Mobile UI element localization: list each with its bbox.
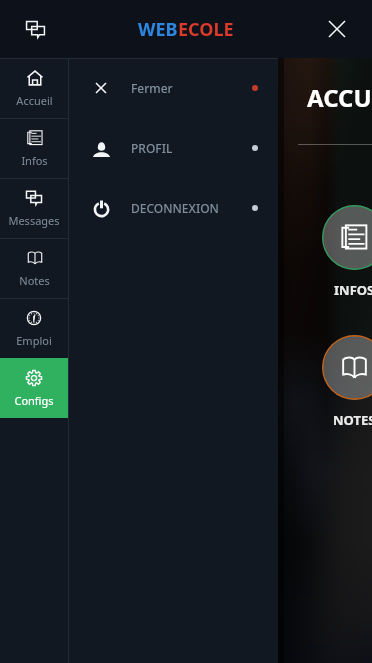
button[interactable]: Messages — [16, 10, 54, 48]
staticText: PROFIL — [131, 140, 173, 156]
staticText: WEB — [138, 17, 178, 42]
staticText: ACCUEIL — [307, 81, 372, 114]
button[interactable]: Infos — [0, 118, 68, 178]
staticText: Accueil — [16, 93, 53, 108]
staticText: Emploi — [16, 333, 52, 348]
staticText: Messages — [8, 213, 60, 228]
button[interactable]: Configs — [0, 358, 68, 418]
button[interactable]: NOTES — [322, 335, 372, 400]
staticText: NOTES — [333, 411, 372, 429]
button[interactable]: Emploi — [0, 298, 68, 358]
staticText: DECONNEXION — [131, 200, 219, 216]
button[interactable]: DECONNEXION — [68, 178, 278, 238]
button[interactable]: Fermer — [68, 58, 278, 118]
staticText: INFOS — [334, 281, 372, 299]
staticText: ECOLE — [178, 17, 234, 42]
button[interactable]: Messages — [0, 178, 68, 238]
button[interactable]: Notes — [0, 238, 68, 298]
staticText: Configs — [14, 393, 54, 408]
button[interactable]: PROFIL — [68, 118, 278, 178]
button[interactable]: Close — [318, 10, 356, 48]
staticText: Notes — [19, 273, 50, 288]
button[interactable]: Accueil — [0, 58, 68, 118]
button[interactable]: INFOS — [322, 205, 372, 270]
staticText: Fermer — [131, 80, 173, 96]
staticText: Infos — [21, 153, 48, 168]
